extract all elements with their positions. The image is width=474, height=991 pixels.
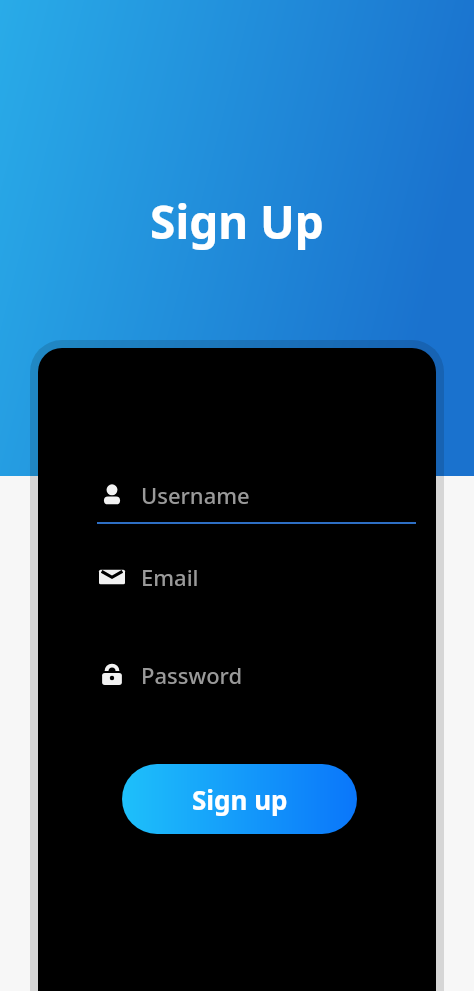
other: Username (97, 480, 127, 510)
staticText: Sign up (192, 782, 288, 817)
staticText: Email (141, 562, 199, 592)
staticText: Sign Up (0, 190, 474, 253)
button[interactable]: Email (38, 562, 436, 604)
button[interactable]: Password (38, 660, 436, 702)
button[interactable]: Username (38, 480, 436, 524)
other: Email (97, 562, 127, 592)
staticText: Password (141, 660, 243, 690)
button[interactable]: Sign up (122, 764, 357, 834)
staticText: Username (141, 480, 250, 510)
other: Password (97, 660, 127, 690)
